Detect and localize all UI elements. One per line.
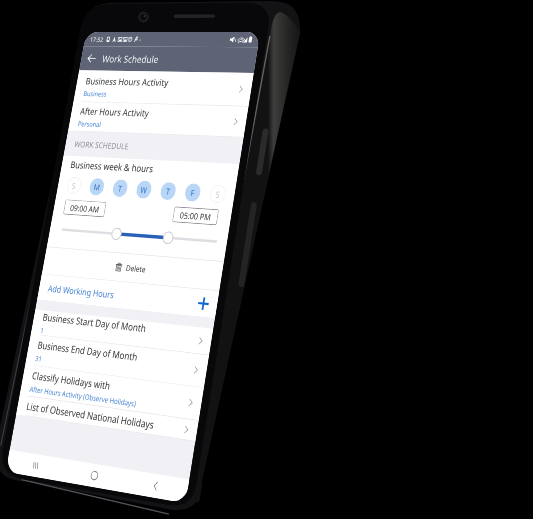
staticText: WORK SCHEDULE (19, 192, 135, 211)
button[interactable]: Business Hours Activity (0, 70, 360, 127)
button[interactable]: Add Working Hours (0, 430, 312, 473)
staticText: Work Schedule (46, 37, 165, 60)
staticText: Delete (172, 397, 212, 415)
staticText: Personal (19, 157, 69, 173)
staticText: S (30, 265, 38, 284)
staticText: Add Working Hours (19, 442, 157, 462)
button[interactable]: T (117, 259, 147, 289)
staticText: Business Start Day of Month (19, 490, 232, 512)
staticText: T (128, 265, 136, 284)
staticText: T (226, 265, 234, 284)
button[interactable]: After Hours Activity (0, 127, 360, 179)
button[interactable]: M (68, 259, 98, 289)
button[interactable]: Delete (0, 383, 360, 429)
staticText: After Hours Activity (19, 132, 165, 154)
button[interactable]: S (19, 259, 49, 289)
button[interactable]: 09:00 AM (22, 299, 109, 325)
staticText: Business Hours Activity (19, 78, 194, 100)
button[interactable]: Business Start Day of Month (0, 490, 360, 519)
staticText: 09:00 AM (35, 303, 97, 322)
button[interactable]: T (215, 259, 245, 289)
staticText: Business week & hours (19, 227, 193, 249)
